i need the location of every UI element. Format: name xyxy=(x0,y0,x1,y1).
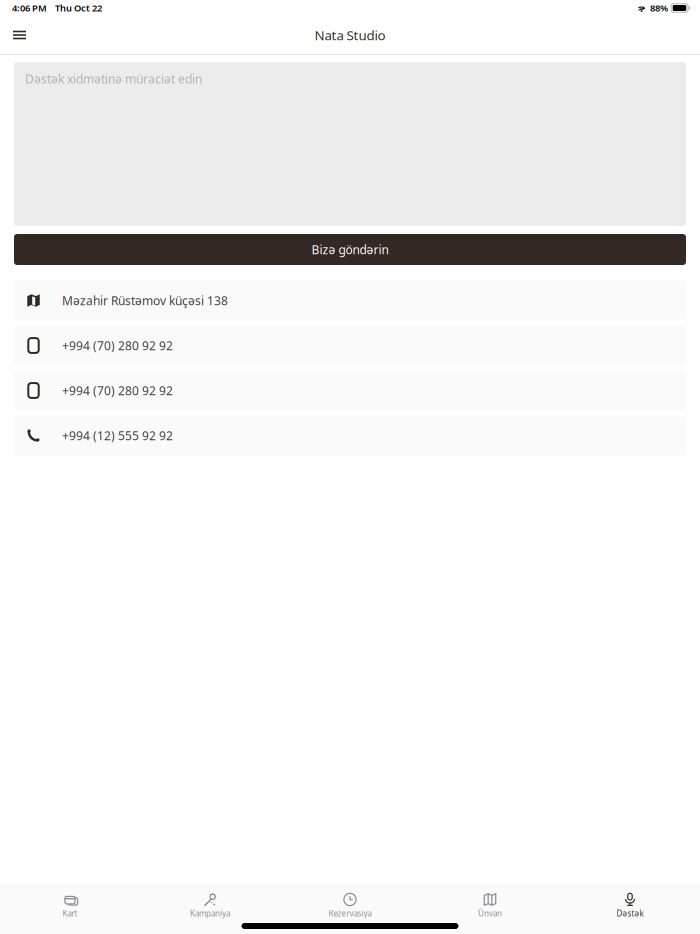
staticText: +994 (12) 555 92 92 xyxy=(62,427,173,443)
staticText: 88% xyxy=(650,2,668,14)
button[interactable]: Dəstək xyxy=(560,880,700,930)
staticText: Thu Oct 22 xyxy=(55,2,102,14)
button[interactable]: Kampaniya xyxy=(140,880,280,930)
staticText: 4:06 PM xyxy=(12,2,47,14)
staticText: Dəstək xyxy=(616,908,643,919)
staticText: Kampaniya xyxy=(190,908,230,919)
button[interactable]: Rezervasiya xyxy=(280,880,420,930)
staticText: +994 (70) 280 92 92 xyxy=(62,337,173,353)
staticText: Ünvan xyxy=(478,908,502,919)
staticText: Məzahir Rüstəmov küçəsi 138 xyxy=(62,292,228,308)
button[interactable]: Menu xyxy=(0,17,42,53)
staticText: Rezervasiya xyxy=(328,908,371,919)
staticText: Kart xyxy=(62,908,77,919)
button[interactable]: Kart xyxy=(0,880,140,930)
staticText: Nata Studio xyxy=(314,26,385,44)
button[interactable]: +994 (12) 555 92 92 xyxy=(14,416,686,455)
staticText: +994 (70) 280 92 92 xyxy=(62,382,173,398)
button[interactable]: Məzahir Rüstəmov küçəsi 138 xyxy=(14,281,686,320)
button[interactable]: +994 (70) 280 92 92 xyxy=(14,371,686,410)
staticText: Bizə göndərin xyxy=(311,241,388,257)
button[interactable]: Ünvan xyxy=(420,880,560,930)
button[interactable]: +994 (70) 280 92 92 xyxy=(14,326,686,365)
button[interactable]: Bizə göndərin xyxy=(14,234,686,265)
staticText: Dəstək xidmətinə müraciət edin xyxy=(25,71,202,87)
